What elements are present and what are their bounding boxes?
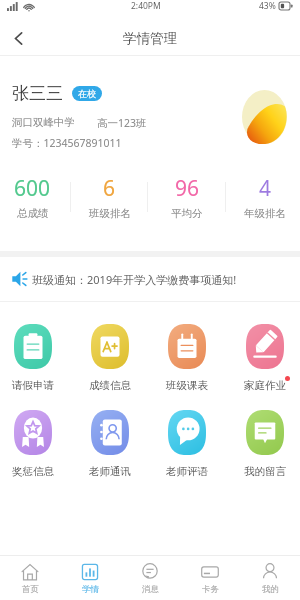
staticText: 老师通讯: [89, 465, 131, 478]
staticText: 年级排名: [244, 207, 286, 220]
button[interactable]: 学情: [60, 556, 120, 600]
staticText: 我的: [262, 584, 279, 595]
staticText: 班级排名: [89, 207, 131, 220]
staticText: 高一123班: [97, 116, 147, 130]
staticText: 600: [14, 174, 51, 203]
staticText: 老师评语: [166, 465, 208, 478]
button[interactable]: 老师通讯: [71, 410, 148, 478]
staticText: 班级通知：2019年开学入学缴费事项通知!: [32, 272, 237, 287]
button[interactable]: 班级课表: [148, 324, 226, 392]
staticText: 我的留言: [244, 465, 286, 478]
staticText: 学号：1234567891011: [12, 136, 122, 150]
button[interactable]: 6: [71, 160, 148, 222]
button[interactable]: 4: [226, 160, 300, 222]
staticText: 学情: [82, 584, 99, 595]
staticText: 奖惩信息: [12, 465, 54, 478]
staticText: 在校: [78, 88, 96, 99]
button[interactable]: Avatar: [242, 90, 287, 144]
button[interactable]: 请假申请: [0, 324, 71, 392]
staticText: 卡务: [202, 584, 219, 595]
button[interactable]: 在校: [72, 86, 102, 101]
staticText: 4: [259, 174, 272, 203]
staticText: 家庭作业: [244, 379, 286, 392]
staticText: 96: [175, 174, 200, 203]
staticText: 成绩信息: [89, 379, 131, 392]
staticText: 洞口双峰中学: [12, 116, 75, 129]
staticText: 学情管理: [123, 30, 177, 47]
button[interactable]: 600: [0, 160, 71, 222]
staticText: 平均分: [171, 207, 203, 220]
button[interactable]: Back: [0, 20, 36, 56]
button[interactable]: 家庭作业: [226, 324, 300, 392]
button[interactable]: 卡务: [180, 556, 240, 600]
staticText: 6: [103, 174, 116, 203]
staticText: 张三三: [12, 83, 63, 104]
staticText: 请假申请: [12, 379, 54, 392]
staticText: 首页: [22, 584, 39, 595]
button[interactable]: 96: [148, 160, 226, 222]
button[interactable]: 班级通知：2019年开学入学缴费事项通知!: [0, 257, 300, 301]
button[interactable]: 老师评语: [148, 410, 226, 478]
staticText: 班级课表: [166, 379, 208, 392]
button[interactable]: 首页: [0, 556, 60, 600]
button[interactable]: 我的留言: [226, 410, 300, 478]
staticText: 43%: [259, 0, 276, 12]
staticText: 2:40PM: [131, 0, 161, 12]
staticText: 总成绩: [17, 207, 49, 220]
button[interactable]: 我的: [240, 556, 300, 600]
button[interactable]: 奖惩信息: [0, 410, 71, 478]
button[interactable]: 消息: [120, 556, 180, 600]
staticText: 消息: [142, 584, 159, 595]
button[interactable]: 成绩信息: [71, 324, 148, 392]
